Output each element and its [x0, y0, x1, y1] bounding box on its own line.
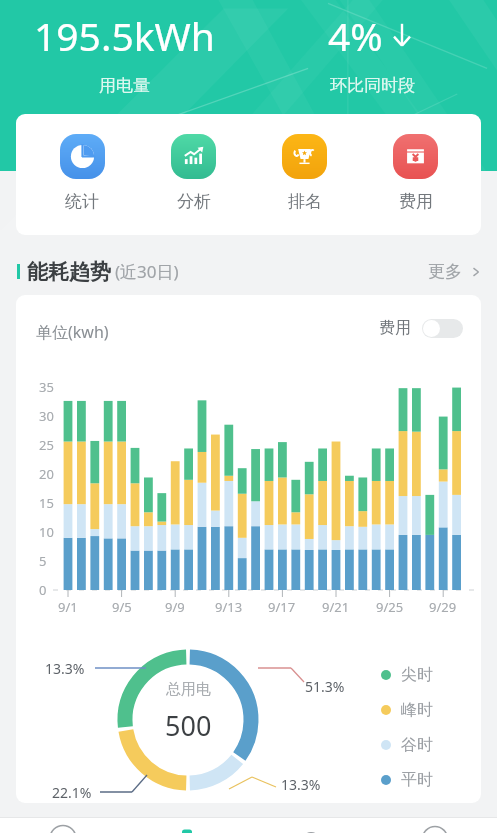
staticText: 尖时 [401, 665, 433, 685]
staticText: 总用电 [166, 680, 211, 699]
staticText: 4% [328, 9, 383, 62]
staticText: 13.3% [281, 775, 321, 794]
button[interactable]: 分析 [138, 134, 249, 212]
staticText: 195.5kWh [34, 9, 215, 62]
staticText: 用电量 [99, 75, 150, 96]
staticText: 15 [39, 494, 54, 512]
staticText: 能耗趋势 [27, 259, 111, 285]
staticText: 30 [39, 407, 54, 425]
staticText: 谷时 [401, 735, 433, 755]
staticText: 9/25 [376, 598, 404, 616]
staticText: 更多 [428, 261, 462, 282]
staticText: 单位(kwh) [36, 321, 109, 343]
staticText: 500 [165, 707, 212, 744]
button[interactable]: 排名 [249, 134, 360, 212]
staticText: 统计 [65, 191, 99, 212]
button[interactable]: 发现 [249, 817, 373, 833]
staticText: 9/13 [215, 598, 243, 616]
staticText: 9/9 [165, 598, 185, 616]
staticText: 9/29 [429, 598, 457, 616]
button[interactable]: 首页 [0, 817, 125, 833]
staticText: 10 [39, 523, 54, 541]
staticText: 费用 [379, 318, 411, 338]
button[interactable]: 统计 [26, 134, 138, 212]
button[interactable]: 我的 [373, 817, 497, 833]
staticText: 9/21 [322, 598, 350, 616]
staticText: 分析 [177, 191, 211, 212]
staticText: 13.3% [45, 659, 85, 678]
staticText: 25 [39, 436, 54, 454]
staticText: 0 [39, 581, 47, 599]
staticText: 35 [39, 378, 54, 396]
staticText: 平时 [401, 770, 433, 790]
button[interactable]: 费用 [360, 134, 471, 212]
staticText: 9/17 [268, 598, 296, 616]
staticText: 费用 [399, 191, 433, 212]
staticText: 51.3% [305, 677, 345, 696]
staticText: 峰时 [401, 700, 433, 720]
staticText: 20 [39, 465, 54, 483]
staticText: 5 [39, 552, 47, 570]
button[interactable]: Toggle cost [379, 318, 463, 338]
staticText: 排名 [288, 191, 322, 212]
staticText: 9/5 [112, 598, 132, 616]
staticText: 22.1% [52, 783, 92, 802]
staticText: 9/1 [58, 598, 78, 616]
button[interactable]: 能耗 [125, 817, 249, 833]
staticText: (近30日) [115, 260, 179, 283]
button[interactable]: 更多 [428, 261, 481, 282]
staticText: 环比同时段 [330, 75, 415, 96]
